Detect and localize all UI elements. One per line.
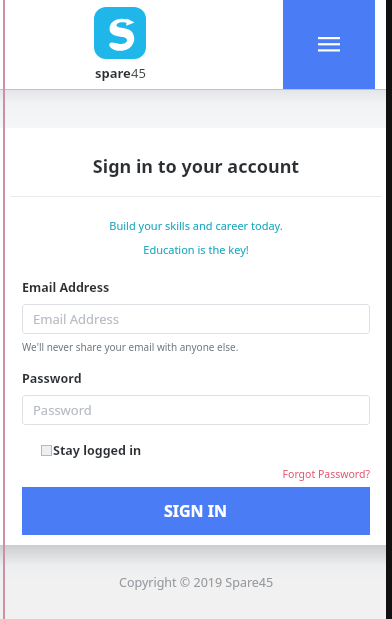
staticText: Password: [33, 401, 92, 419]
staticText: 45: [131, 64, 146, 82]
staticText: SIGN IN: [164, 500, 228, 522]
button[interactable]: SIGN IN: [22, 487, 370, 535]
button[interactable]: Password: [22, 395, 370, 425]
button[interactable]: Education is the key!: [0, 242, 392, 257]
button[interactable]: spare: [85, 7, 155, 82]
staticText: Email Address: [22, 279, 110, 296]
button[interactable]: Menu: [283, 0, 375, 89]
staticText: Copyright © 2019 Spare45: [119, 574, 274, 591]
button[interactable]: Forgot Password?: [22, 467, 370, 481]
staticText: Sign in to your account: [0, 154, 392, 179]
staticText: We'll never share your email with anyone…: [22, 340, 239, 354]
button[interactable]: Stay logged in: [41, 442, 142, 459]
staticText: Stay logged in: [53, 442, 142, 459]
button[interactable]: Build your skills and career today.: [0, 218, 392, 233]
staticText: Password: [22, 370, 82, 387]
button[interactable]: Email Address: [22, 304, 370, 334]
staticText: spare: [95, 64, 131, 82]
staticText: Email Address: [33, 310, 119, 328]
